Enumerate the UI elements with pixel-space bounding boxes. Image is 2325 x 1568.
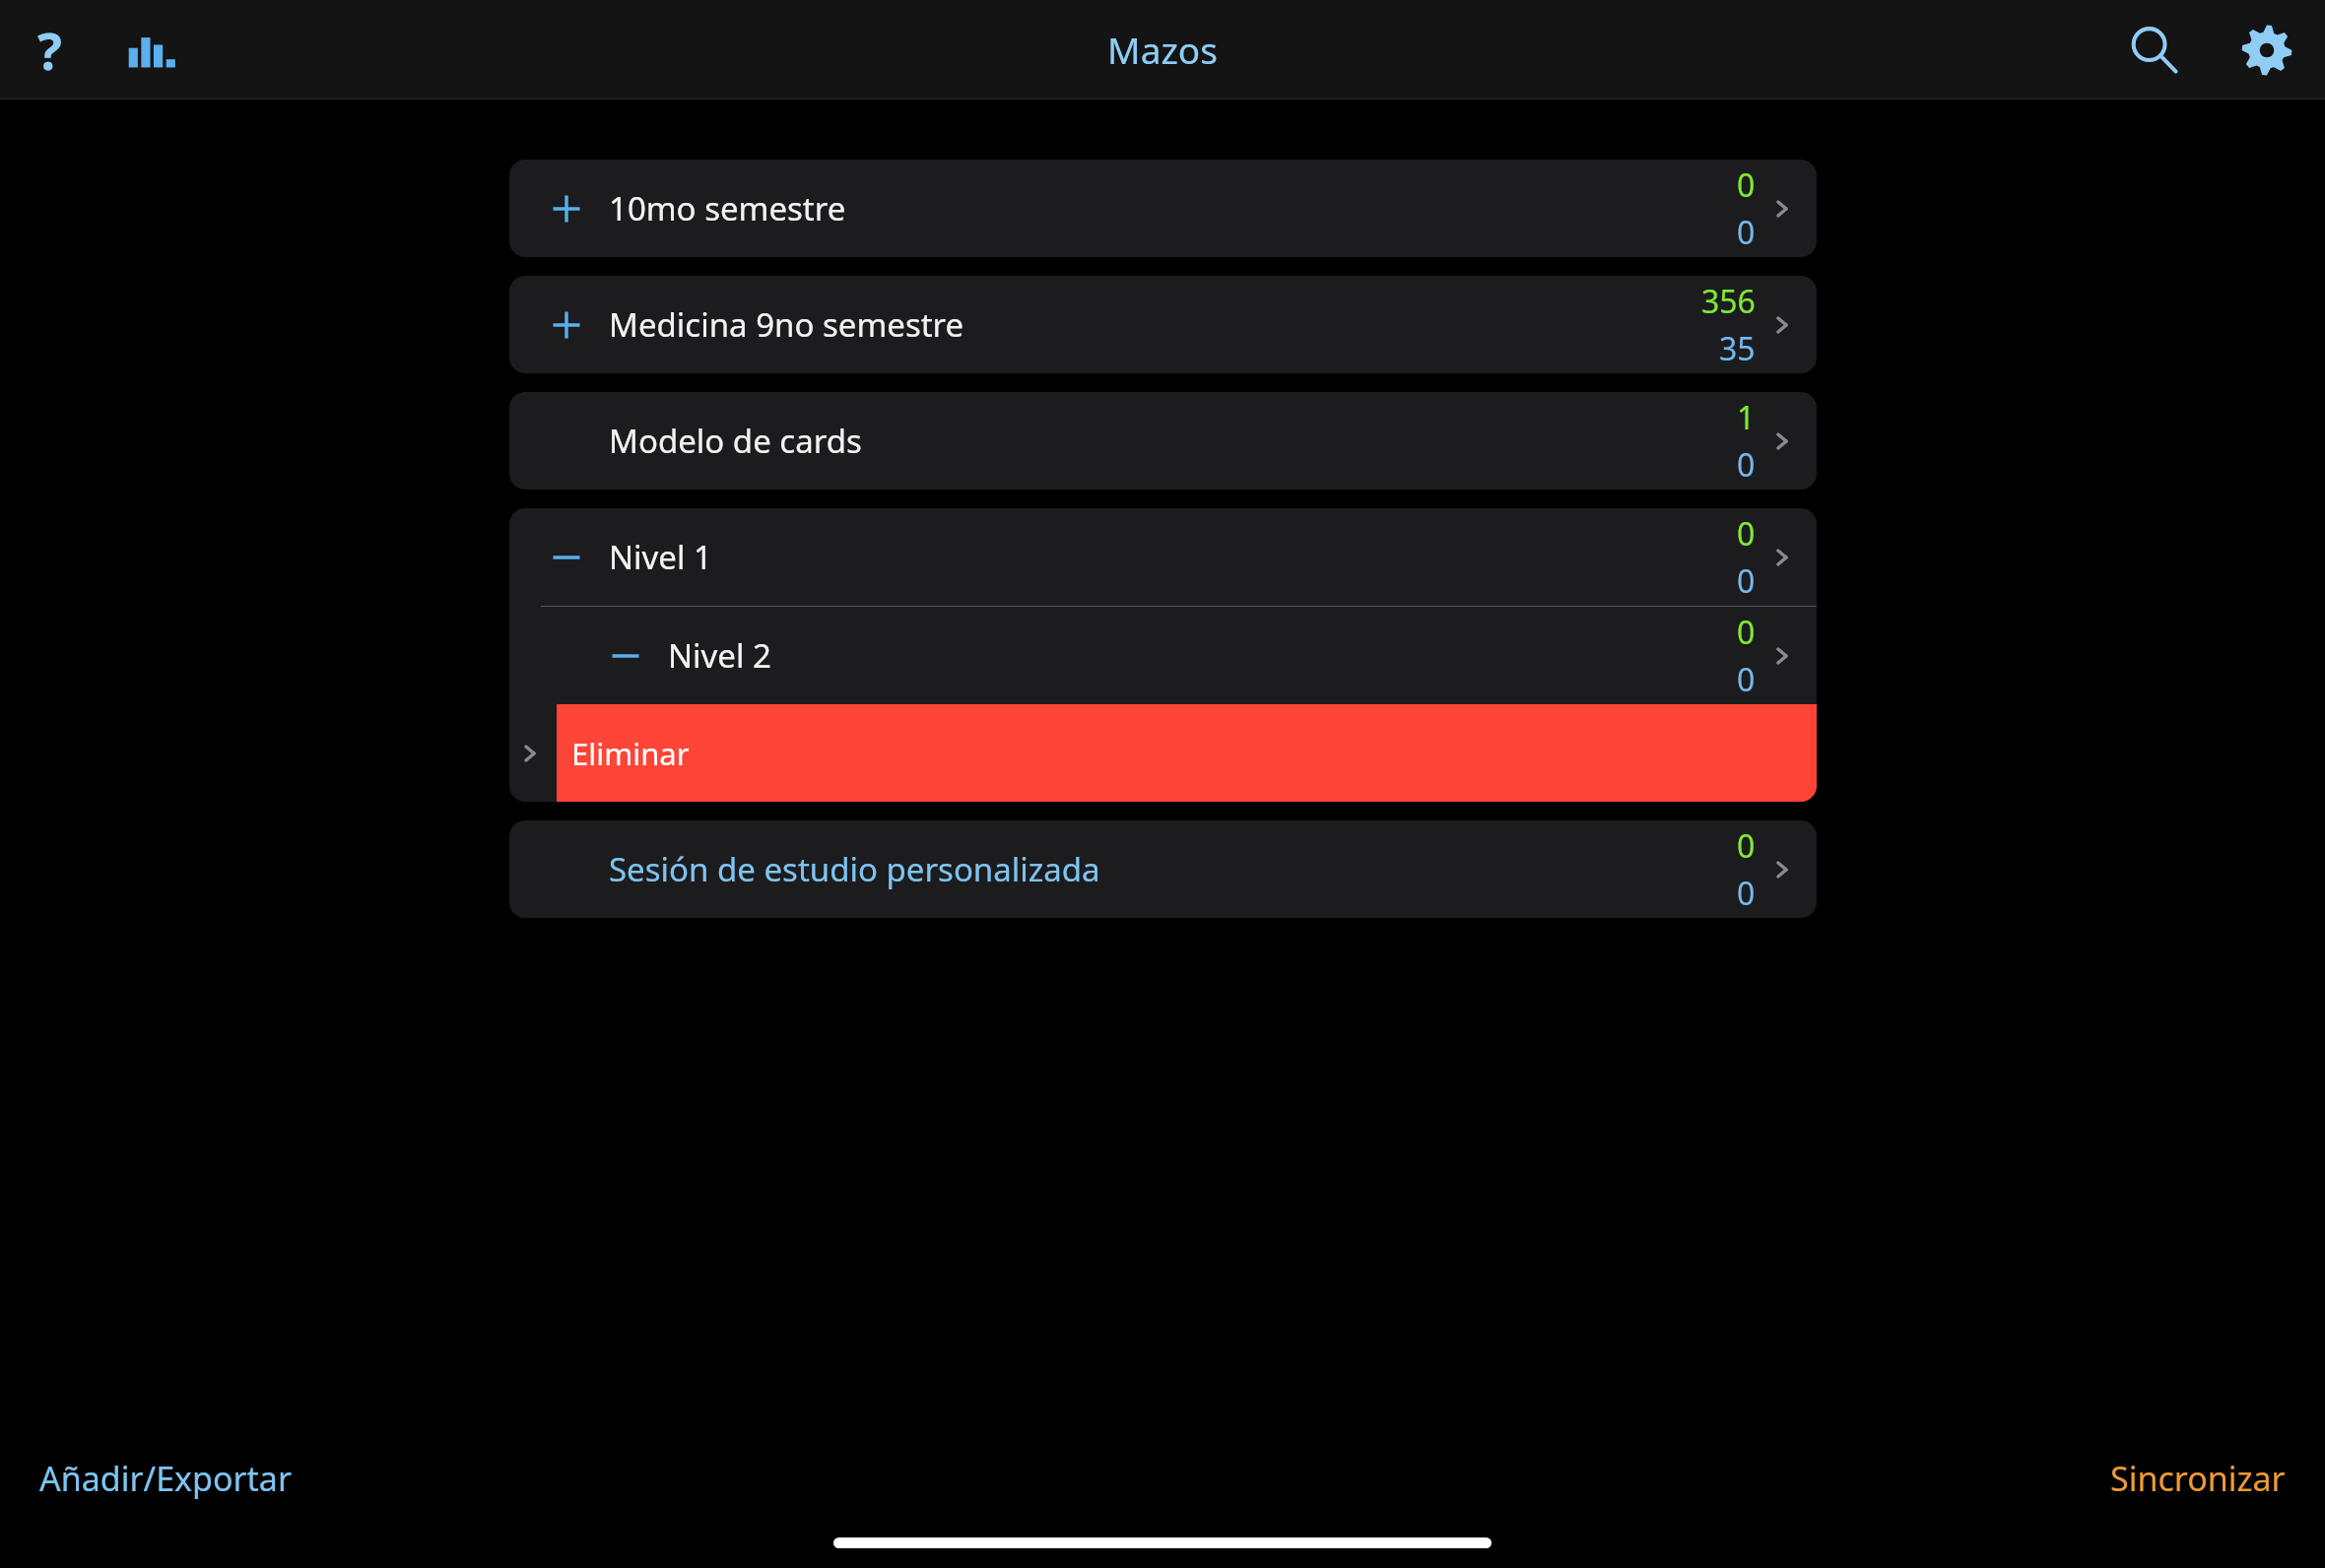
staticText: 0 — [1737, 611, 1756, 654]
staticText: 0 — [1737, 211, 1756, 254]
staticText: 0 — [1737, 658, 1756, 701]
staticText: ? — [37, 15, 62, 85]
button[interactable]: Help — [0, 0, 99, 99]
staticText: 0 — [1737, 512, 1756, 555]
staticText: 35 — [1719, 327, 1756, 370]
staticText: Eliminar — [571, 733, 690, 774]
button[interactable]: Nivel 2 — [509, 607, 1817, 704]
staticText: Sesión de estudio personalizada — [609, 847, 1100, 891]
staticText: Sincronizar — [2110, 1456, 2286, 1501]
button[interactable]: Sesión de estudio personalizada — [509, 820, 1817, 918]
button[interactable]: Sincronizar — [2089, 1438, 2307, 1519]
button[interactable]: Medicina 9no semestre — [509, 276, 1817, 373]
staticText: Nivel 2 — [668, 633, 771, 678]
button[interactable]: Modelo de cards — [509, 392, 1817, 490]
button[interactable]: 10mo semestre — [509, 160, 1817, 257]
button[interactable]: 10mo semestre — [509, 160, 1817, 257]
staticText: Medicina 9no semestre — [609, 302, 964, 347]
staticText: 0 — [1737, 163, 1756, 207]
button[interactable]: Settings — [2209, 0, 2325, 99]
staticText: 0 — [1737, 559, 1756, 603]
staticText: Añadir/Exportar — [39, 1456, 292, 1501]
button[interactable]: Statistics — [99, 0, 197, 99]
button[interactable]: Nivel 1 — [509, 508, 1817, 606]
button[interactable]: Sesión de estudio personalizada — [509, 820, 1817, 918]
staticText: 10mo semestre — [609, 186, 846, 230]
staticText: 0 — [1737, 824, 1756, 868]
button[interactable]: Añadir/Exportar — [18, 1438, 313, 1519]
staticText: 1 — [1737, 396, 1756, 439]
button[interactable]: Medicina 9no semestre — [509, 276, 1817, 373]
staticText: 0 — [1737, 872, 1756, 915]
button[interactable]: Search — [2100, 0, 2209, 99]
staticText: 0 — [1737, 443, 1756, 487]
button[interactable]: Modelo de cards — [509, 392, 1817, 490]
staticText: Modelo de cards — [609, 419, 862, 463]
button[interactable]: Eliminar — [557, 704, 1817, 802]
staticText: Nivel 1 — [609, 535, 712, 579]
staticText: Mazos — [1107, 25, 1218, 74]
staticText: 356 — [1701, 280, 1756, 323]
